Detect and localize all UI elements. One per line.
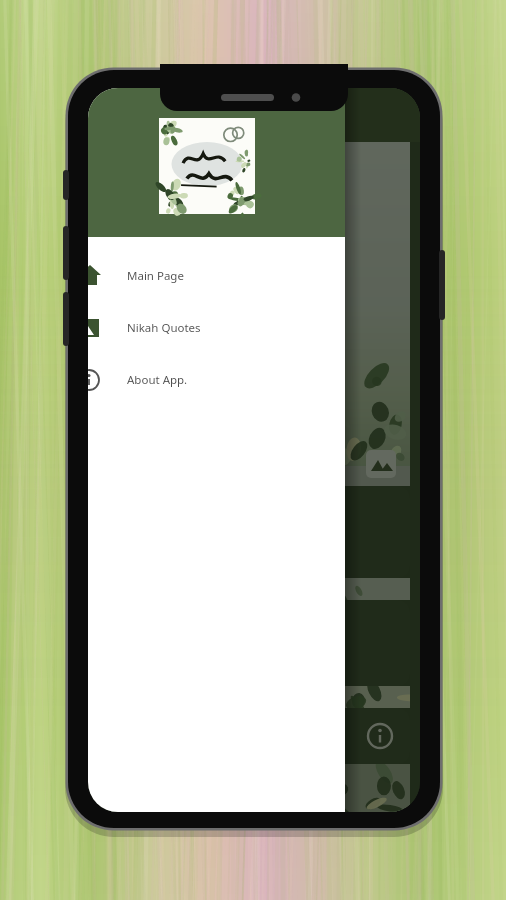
staticText: About App. bbox=[127, 372, 188, 388]
button[interactable]: Main Page bbox=[88, 250, 345, 302]
staticText: Nikah Quotes bbox=[127, 320, 201, 336]
button[interactable]: Nikah Quotes bbox=[88, 302, 345, 354]
button[interactable]: About App. bbox=[88, 354, 345, 406]
staticText: Main Page bbox=[127, 268, 184, 284]
